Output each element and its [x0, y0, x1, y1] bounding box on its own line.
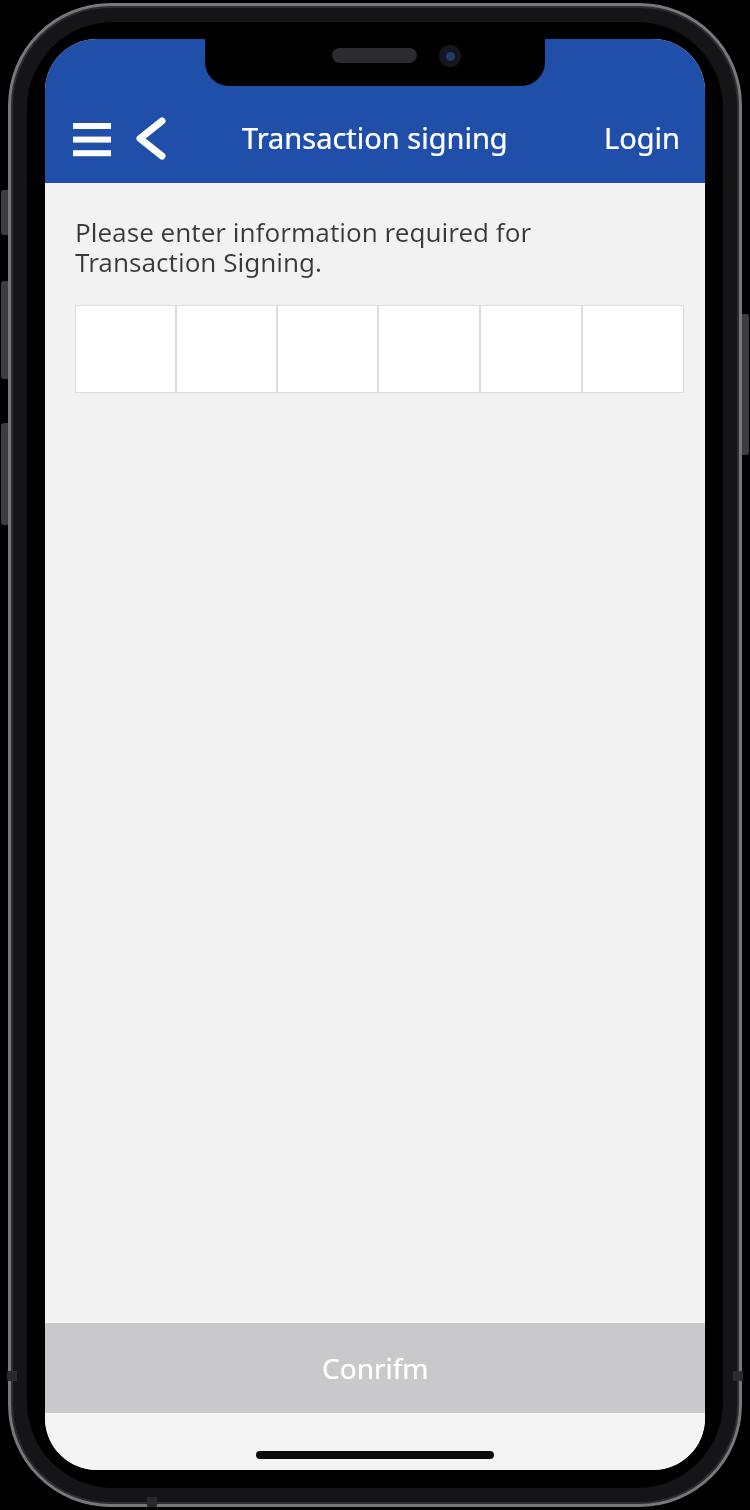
- button[interactable]: [480, 305, 582, 393]
- button[interactable]: [73, 123, 111, 156]
- button[interactable]: Conrifm: [45, 1323, 705, 1413]
- button[interactable]: [75, 305, 176, 393]
- staticText: Login: [604, 118, 680, 157]
- button[interactable]: [277, 305, 378, 393]
- staticText: Please enter information required for: [75, 214, 532, 249]
- button[interactable]: Login: [604, 118, 680, 157]
- button[interactable]: [176, 305, 277, 393]
- button[interactable]: [378, 305, 480, 393]
- staticText: Conrifm: [322, 1349, 429, 1387]
- button[interactable]: [582, 305, 684, 393]
- button[interactable]: [138, 121, 162, 156]
- staticText: Transaction Signing.: [75, 244, 322, 279]
- staticText: Transaction signing: [242, 118, 508, 157]
